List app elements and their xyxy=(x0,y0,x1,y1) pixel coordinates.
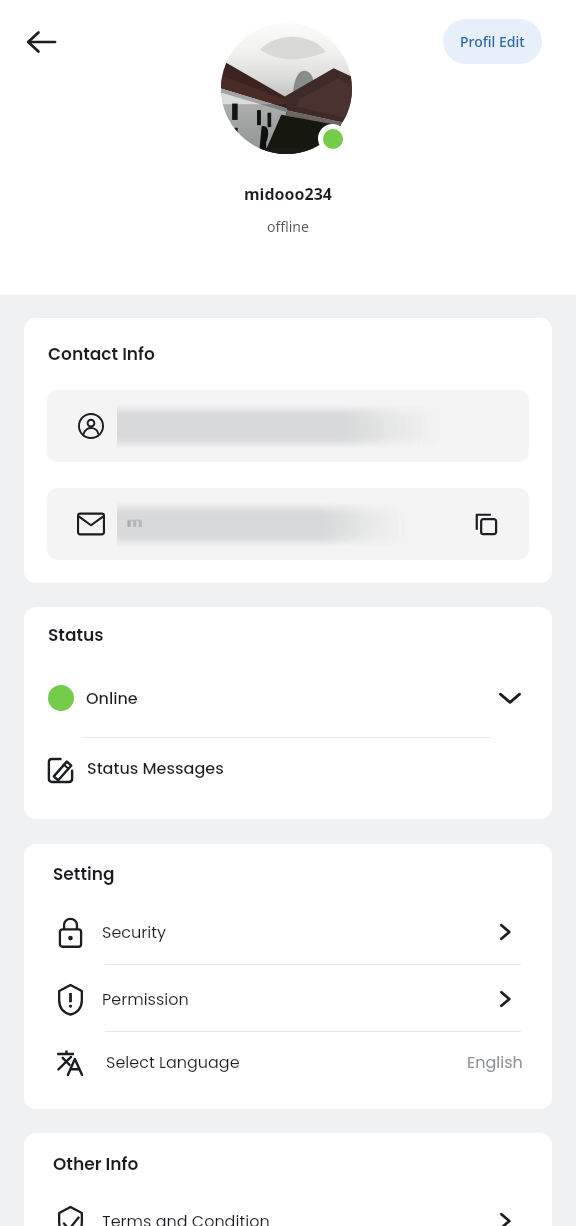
staticText: Status xyxy=(48,623,104,647)
button[interactable] xyxy=(47,390,529,462)
staticText: Security xyxy=(102,921,167,943)
button[interactable]: Select Language xyxy=(24,1030,552,1094)
staticText: offline xyxy=(267,217,309,236)
staticText: Permission xyxy=(102,988,189,1010)
button[interactable]: Copy xyxy=(467,505,505,543)
staticText: midooo234 xyxy=(244,183,332,205)
staticText: Select Language xyxy=(106,1051,240,1073)
button[interactable]: Copy xyxy=(47,488,529,560)
button[interactable]: Profil Edit xyxy=(443,19,542,64)
staticText: Online xyxy=(86,687,138,709)
staticText: Status Messages xyxy=(87,757,224,779)
staticText: Setting xyxy=(53,862,115,886)
button[interactable]: Online xyxy=(24,669,552,727)
staticText: English xyxy=(467,1051,523,1073)
staticText: Profil Edit xyxy=(460,32,525,51)
staticText: Other Info xyxy=(53,1152,139,1176)
staticText: Contact Info xyxy=(48,342,155,366)
button[interactable]: Security xyxy=(24,900,552,964)
button[interactable]: Terms and Condition xyxy=(24,1189,552,1226)
button[interactable]: Permission xyxy=(24,967,552,1031)
button[interactable]: Status Messages xyxy=(24,740,552,796)
button[interactable]: Back xyxy=(17,18,65,66)
staticText: Terms and Condition xyxy=(102,1210,270,1226)
